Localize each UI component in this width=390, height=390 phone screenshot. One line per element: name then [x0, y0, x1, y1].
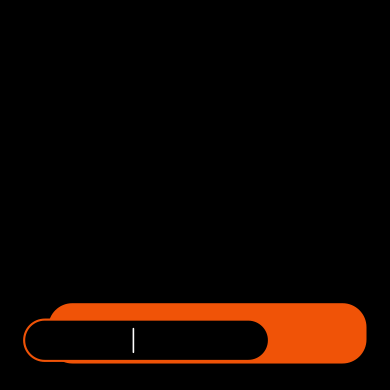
button[interactable]: Dictate	[48, 303, 366, 363]
button[interactable]: Message	[24, 320, 269, 361]
